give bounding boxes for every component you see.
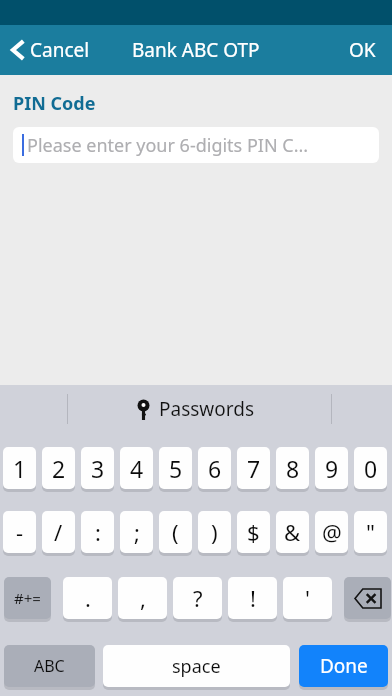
staticText: Please enter your 6-digits PIN C...	[27, 133, 309, 158]
button[interactable]: Passwords	[129, 392, 263, 426]
staticText: 9	[325, 453, 339, 484]
button[interactable]: Done	[299, 645, 388, 687]
staticText: Cancel	[30, 37, 90, 63]
button[interactable]: -	[3, 511, 36, 553]
button[interactable]: 4	[120, 447, 153, 489]
staticText: OK	[349, 37, 376, 63]
button[interactable]: 0	[354, 447, 387, 489]
staticText: ;	[134, 517, 140, 547]
button[interactable]: @	[315, 511, 348, 553]
staticText: "	[366, 517, 375, 547]
staticText: /	[54, 517, 63, 547]
button[interactable]: 3	[81, 447, 114, 489]
button[interactable]: :	[81, 511, 114, 553]
staticText: 1	[13, 453, 27, 484]
staticText: Passwords	[159, 396, 255, 422]
button[interactable]: 8	[276, 447, 309, 489]
staticText: ?	[193, 583, 203, 613]
button[interactable]: ,	[118, 577, 167, 619]
staticText: space	[172, 654, 221, 679]
staticText: 3	[91, 453, 105, 484]
staticText: 0	[364, 453, 378, 484]
staticText: Bank ABC OTP	[132, 37, 260, 63]
staticText: )	[211, 517, 218, 547]
button[interactable]: #+=	[4, 577, 51, 619]
button[interactable]: 5	[159, 447, 192, 489]
button[interactable]: 6	[198, 447, 231, 489]
staticText: '	[305, 583, 310, 613]
button[interactable]: ABC	[4, 645, 95, 687]
button[interactable]: 2	[42, 447, 75, 489]
staticText: &	[284, 517, 301, 547]
button[interactable]: /	[42, 511, 75, 553]
staticText: 2	[52, 453, 66, 484]
staticText: 7	[247, 453, 261, 484]
staticText: 6	[208, 453, 222, 484]
button[interactable]: !	[228, 577, 277, 619]
button[interactable]: $	[237, 511, 270, 553]
button[interactable]: ?	[173, 577, 222, 619]
button[interactable]: space	[103, 645, 290, 687]
button[interactable]: '	[283, 577, 332, 619]
button[interactable]: (	[159, 511, 192, 553]
button[interactable]: "	[354, 511, 387, 553]
button[interactable]: ;	[120, 511, 153, 553]
button[interactable]: OK	[333, 25, 392, 75]
button[interactable]: 7	[237, 447, 270, 489]
button[interactable]: 1	[3, 447, 36, 489]
staticText: ABC	[34, 655, 65, 677]
staticText: 4	[130, 453, 144, 484]
staticText: !	[250, 583, 256, 613]
staticText: @	[322, 517, 342, 547]
staticText: Done	[320, 653, 368, 679]
staticText: 5	[169, 453, 183, 484]
staticText: 8	[286, 453, 300, 484]
staticText: ,	[140, 583, 146, 613]
button[interactable]: .	[63, 577, 112, 619]
button[interactable]: Backspace	[344, 577, 391, 619]
staticText: (	[172, 517, 179, 547]
button[interactable]: Cancel	[0, 25, 100, 75]
staticText: .	[85, 583, 91, 613]
staticText: #+=	[14, 588, 41, 608]
button[interactable]: &	[276, 511, 309, 553]
staticText: -	[16, 517, 24, 547]
staticText: PIN Code	[13, 91, 96, 116]
staticText: $	[247, 517, 260, 547]
button[interactable]: Please enter your 6-digits PIN C...	[13, 127, 379, 163]
staticText: :	[95, 517, 101, 547]
button[interactable]: 9	[315, 447, 348, 489]
button[interactable]: )	[198, 511, 231, 553]
